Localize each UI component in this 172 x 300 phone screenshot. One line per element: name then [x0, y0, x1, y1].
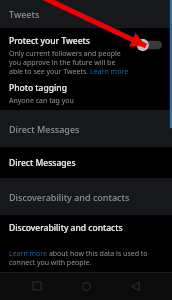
staticText: Discoverability and contacts: [9, 191, 130, 203]
staticText: Learn more about how this data is used t…: [9, 249, 160, 267]
button[interactable]: Discoverability and contacts: [0, 215, 172, 240]
staticText: Tweets: [9, 8, 40, 20]
staticText: Discoverability and contacts: [9, 222, 123, 234]
staticText: Anyone can tag you: [9, 96, 74, 106]
staticText: Direct Messages: [9, 157, 76, 169]
button[interactable]: Back: [123, 274, 147, 298]
staticText: Direct Messages: [9, 123, 80, 135]
button[interactable]: Protect your Tweets toggle: [136, 38, 162, 52]
staticText: Photo tagging: [9, 82, 67, 94]
staticText: Protect your Tweets: [9, 35, 91, 47]
button[interactable]: Home: [74, 274, 98, 298]
button[interactable]: Direct Messages: [0, 147, 172, 178]
button[interactable]: Protect your Tweets: [0, 28, 172, 78]
button[interactable]: Recent apps: [25, 274, 49, 298]
staticText: Only current followers and people you ap…: [9, 49, 129, 76]
button[interactable]: Photo tagging: [0, 78, 172, 110]
